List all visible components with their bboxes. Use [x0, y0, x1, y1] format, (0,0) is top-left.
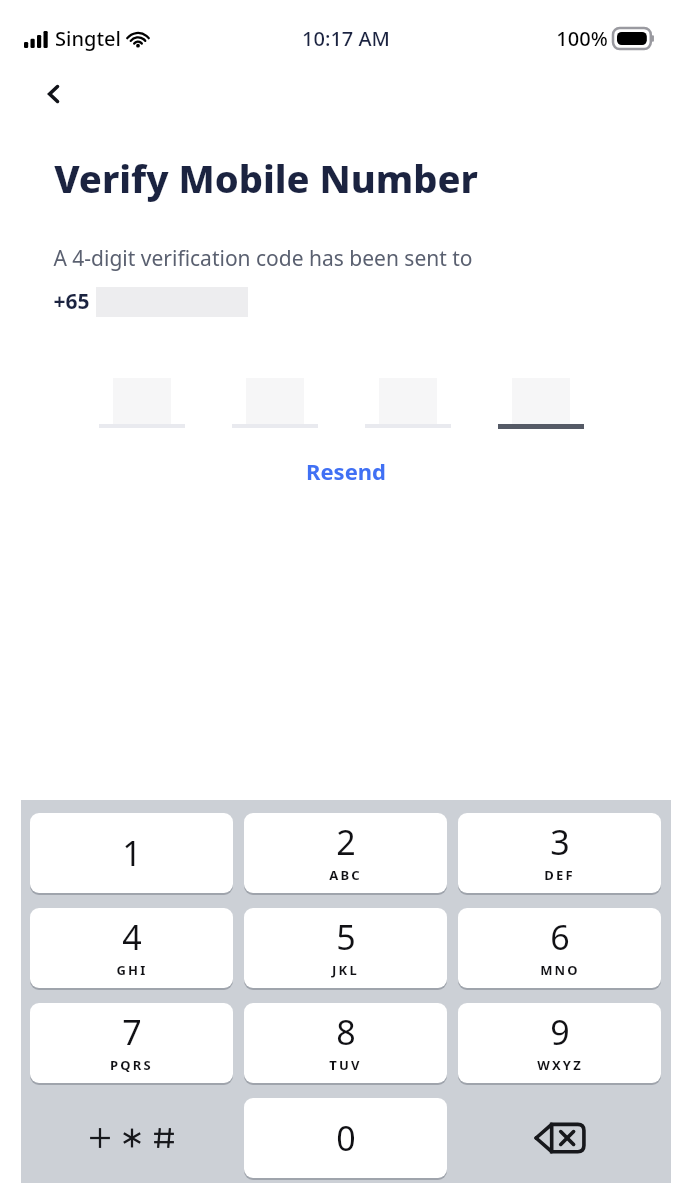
staticText: 2 [336, 819, 356, 865]
staticText: Verify Mobile Number [54, 152, 478, 204]
button[interactable]: Digit 3 [365, 368, 451, 424]
staticText: DEF [544, 866, 575, 884]
staticText: 100% [556, 25, 608, 52]
staticText: 3 [550, 819, 570, 865]
staticText: Singtel [55, 25, 121, 52]
staticText: PQRS [110, 1056, 153, 1074]
staticText: A 4-digit verification code has been sen… [53, 244, 473, 273]
staticText: GHI [116, 961, 148, 979]
staticText: TUV [329, 1056, 362, 1074]
staticText: JKL [332, 961, 359, 979]
button[interactable]: 4 [30, 908, 233, 988]
button[interactable]: Resend [296, 452, 396, 490]
button[interactable]: 7 [30, 1003, 233, 1083]
staticText: 9 [550, 1009, 570, 1055]
button[interactable]: Backspace [458, 1098, 661, 1178]
staticText: 5 [336, 914, 356, 960]
button[interactable]: 0 [244, 1098, 447, 1178]
button[interactable]: Plus star hash [30, 1098, 233, 1178]
staticText: 8 [336, 1009, 356, 1055]
staticText: WXYZ [537, 1056, 583, 1074]
button[interactable]: Digit 2 [232, 368, 318, 424]
staticText: 10:17 AM [302, 25, 390, 52]
button[interactable]: 3 [458, 813, 661, 893]
staticText: +65 [53, 287, 90, 316]
button[interactable]: 1 [30, 813, 233, 893]
button[interactable]: 5 [244, 908, 447, 988]
button[interactable]: 6 [458, 908, 661, 988]
button[interactable]: 9 [458, 1003, 661, 1083]
button[interactable]: 2 [244, 813, 447, 893]
staticText: 7 [122, 1009, 142, 1055]
button[interactable]: Back [26, 66, 82, 122]
staticText: 1 [122, 830, 142, 876]
staticText: Resend [306, 456, 386, 486]
staticText: ABC [329, 866, 362, 884]
button[interactable]: Digit 4 [498, 368, 584, 424]
staticText: MNO [540, 961, 580, 979]
button[interactable]: 8 [244, 1003, 447, 1083]
button[interactable]: Digit 1 [99, 368, 185, 424]
staticText: 4 [122, 914, 142, 960]
staticText: 0 [336, 1115, 356, 1161]
staticText: 6 [550, 914, 570, 960]
